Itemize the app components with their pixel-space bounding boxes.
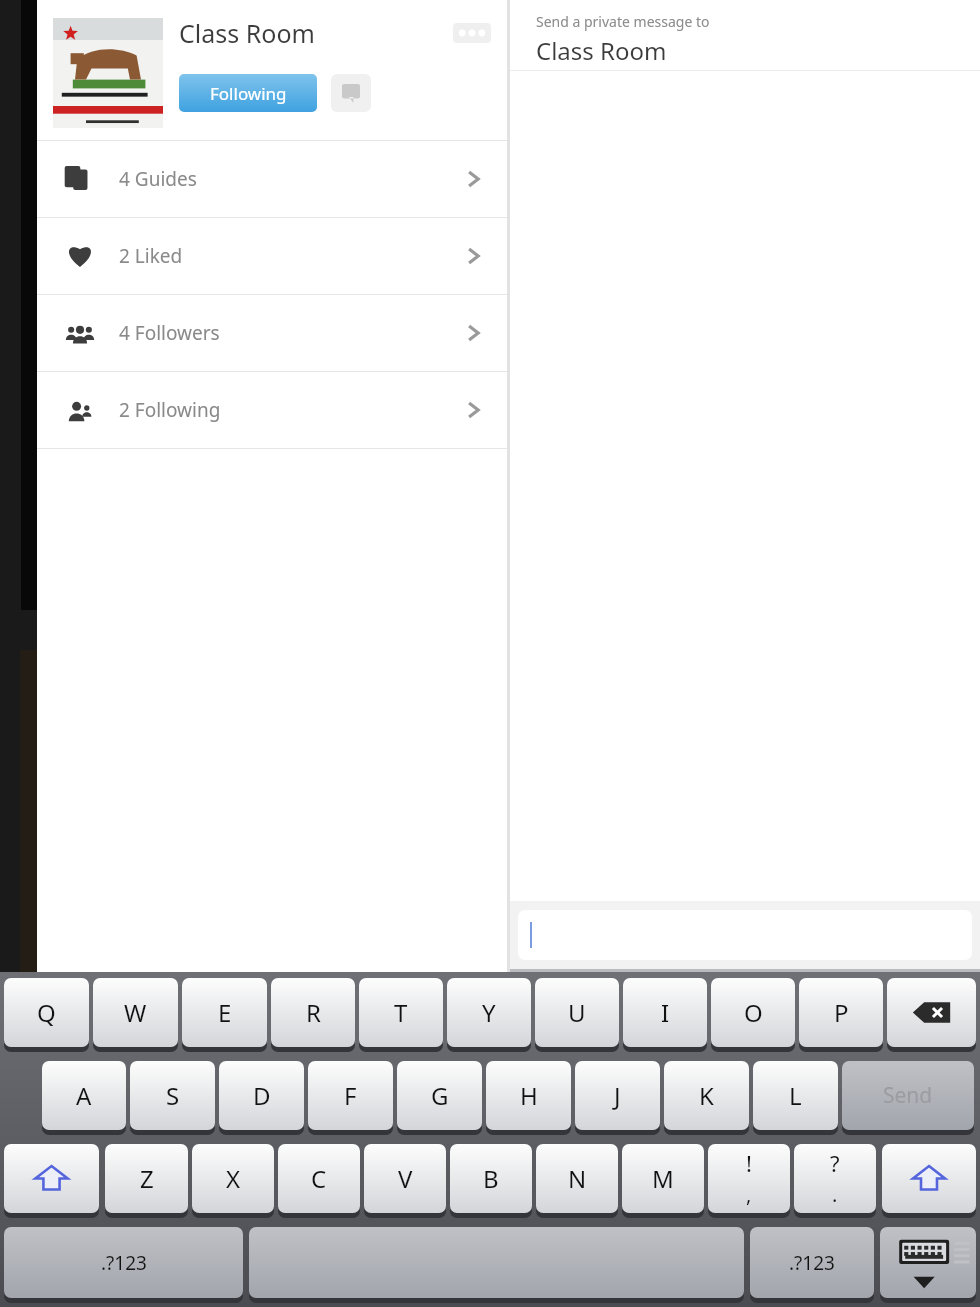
button[interactable]: I <box>623 978 707 1050</box>
button[interactable]: T <box>359 978 443 1050</box>
staticText: X <box>226 1162 241 1195</box>
button[interactable]: D <box>219 1061 304 1133</box>
staticText: Q <box>37 996 56 1029</box>
button[interactable]: V <box>364 1144 446 1216</box>
staticText: R <box>306 996 321 1029</box>
button[interactable]: 4 Followers <box>37 295 507 371</box>
button[interactable]: More options <box>453 23 491 43</box>
staticText: P <box>834 996 849 1029</box>
staticText: . <box>832 1181 838 1208</box>
button[interactable]: E <box>182 978 267 1050</box>
staticText: 2 Following <box>119 397 467 423</box>
staticText: Class Room <box>536 34 667 67</box>
staticText: D <box>253 1079 271 1112</box>
button[interactable]: H <box>486 1061 571 1133</box>
staticText: Send a private message to <box>536 12 710 31</box>
button[interactable]: Backspace <box>887 978 976 1050</box>
button[interactable]: 2 Following <box>37 372 507 448</box>
staticText: E <box>218 996 232 1029</box>
staticText: Following <box>210 82 287 105</box>
button[interactable]: R <box>271 978 355 1050</box>
button[interactable]: Following <box>179 74 317 112</box>
button[interactable]: 4 Guides <box>37 141 507 217</box>
staticText: S <box>166 1079 180 1112</box>
button[interactable]: S <box>130 1061 215 1133</box>
button[interactable]: C <box>278 1144 360 1216</box>
staticText: 2 Liked <box>119 243 467 269</box>
staticText: , <box>746 1181 752 1208</box>
button[interactable]: M <box>622 1144 704 1216</box>
staticText: H <box>520 1079 538 1112</box>
staticText: ? <box>830 1148 840 1178</box>
staticText: .?123 <box>789 1250 835 1276</box>
button[interactable]: Space <box>249 1227 744 1301</box>
button[interactable]: N <box>536 1144 618 1216</box>
staticText: G <box>431 1079 449 1112</box>
staticText: O <box>744 996 763 1029</box>
button[interactable]: Hide keyboard <box>880 1227 976 1301</box>
button[interactable]: Shift <box>882 1144 976 1216</box>
staticText: Send <box>883 1081 933 1110</box>
button[interactable]: Question period <box>794 1144 876 1216</box>
button[interactable]: Z <box>105 1144 188 1216</box>
staticText: 4 Followers <box>119 320 467 346</box>
staticText: V <box>398 1162 413 1195</box>
button[interactable]: W <box>93 978 178 1050</box>
staticText: N <box>568 1162 587 1195</box>
staticText: A <box>76 1079 92 1112</box>
staticText: U <box>568 996 586 1029</box>
button[interactable]: Shift <box>4 1144 99 1216</box>
button[interactable]: L <box>753 1061 838 1133</box>
staticText: T <box>394 996 408 1029</box>
button[interactable]: P <box>799 978 883 1050</box>
staticText: ! <box>746 1148 752 1178</box>
button[interactable]: O <box>711 978 795 1050</box>
button[interactable]: Exclamation comma <box>708 1144 790 1216</box>
staticText: Class Room <box>179 16 453 50</box>
button[interactable]: K <box>664 1061 749 1133</box>
staticText: Y <box>482 996 496 1029</box>
staticText: W <box>124 996 147 1029</box>
button[interactable] <box>518 910 972 960</box>
button[interactable]: Send <box>842 1061 974 1133</box>
staticText: 4 Guides <box>119 166 467 192</box>
staticText: C <box>311 1162 327 1195</box>
button[interactable]: Q <box>4 978 89 1050</box>
button[interactable]: Message <box>331 74 371 112</box>
staticText: L <box>789 1079 802 1112</box>
staticText: K <box>699 1079 714 1112</box>
button[interactable]: G <box>397 1061 482 1133</box>
button[interactable]: A <box>42 1061 126 1133</box>
staticText: B <box>483 1162 499 1195</box>
button[interactable]: B <box>450 1144 532 1216</box>
staticText: .?123 <box>101 1250 147 1276</box>
button[interactable]: .?123 <box>750 1227 874 1301</box>
button[interactable]: X <box>192 1144 274 1216</box>
staticText: M <box>652 1162 674 1195</box>
button[interactable]: Y <box>447 978 531 1050</box>
button[interactable]: 2 Liked <box>37 218 507 294</box>
button[interactable]: J <box>575 1061 660 1133</box>
staticText: I <box>661 996 670 1029</box>
button[interactable]: .?123 <box>4 1227 243 1301</box>
staticText: Z <box>140 1162 154 1195</box>
staticText: F <box>344 1079 357 1112</box>
button[interactable]: F <box>308 1061 393 1133</box>
staticText: J <box>614 1079 621 1112</box>
button[interactable]: U <box>535 978 619 1050</box>
